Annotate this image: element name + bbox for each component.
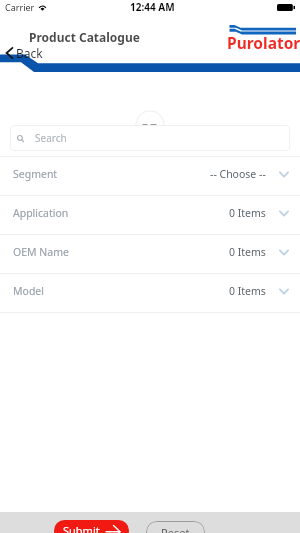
staticText: Product Catalogue <box>29 29 140 45</box>
button[interactable]: Reset <box>146 521 205 533</box>
button[interactable]: Expand OEM Name <box>277 245 291 259</box>
button[interactable]: Expand Model <box>277 284 291 298</box>
staticText: Back <box>16 45 43 61</box>
staticText: 0 Items <box>229 206 266 220</box>
staticText: 0 Items <box>229 245 266 259</box>
staticText: Search <box>35 131 67 145</box>
staticText: Reset <box>161 525 190 533</box>
staticText: 0 Items <box>229 284 266 298</box>
staticText: Carrier <box>5 1 35 13</box>
staticText: Model <box>13 284 44 298</box>
button[interactable]: OEM Name <box>0 235 300 273</box>
staticText: -- Choose -- <box>210 167 266 181</box>
staticText: Purolator <box>227 32 300 53</box>
button[interactable]: Search <box>10 125 290 151</box>
staticText: 12:44 AM <box>130 0 175 14</box>
button[interactable]: Expand Application <box>277 206 291 220</box>
staticText: OEM Name <box>13 245 69 259</box>
button[interactable]: Application <box>0 196 300 234</box>
staticText: Segment <box>13 167 58 181</box>
button[interactable]: Segment <box>0 157 300 195</box>
staticText: Submit <box>63 523 100 533</box>
button[interactable]: Model <box>0 274 300 312</box>
button[interactable]: Expand Segment <box>277 167 291 181</box>
button[interactable]: Submit <box>54 520 129 533</box>
staticText: Application <box>13 206 69 220</box>
button[interactable]: Back <box>4 44 45 62</box>
